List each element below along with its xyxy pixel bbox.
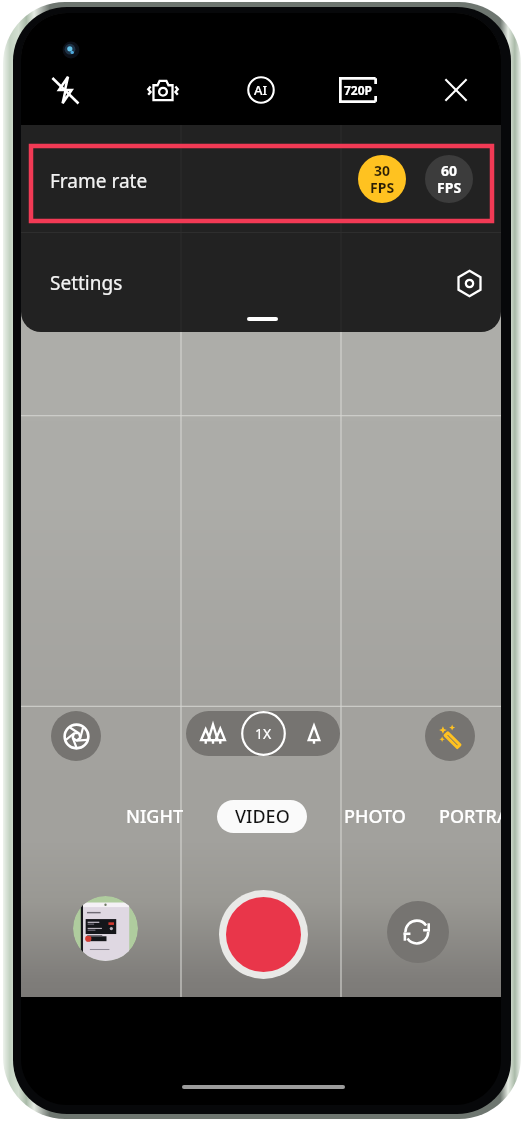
staticText: 30 — [374, 161, 391, 180]
staticText: 60 — [441, 161, 458, 180]
button[interactable]: Ultra wide — [186, 711, 239, 756]
button[interactable]: 1X — [239, 711, 287, 756]
staticText: PHOTO — [344, 804, 406, 829]
button[interactable]: Resolution 720P — [335, 67, 381, 113]
button[interactable]: Flash off — [42, 67, 88, 113]
button[interactable]: Video stabilisation — [140, 67, 186, 113]
button[interactable]: 60 — [425, 155, 473, 203]
button[interactable]: Effects — [425, 711, 475, 761]
button[interactable]: Close — [433, 67, 479, 113]
button[interactable]: Record — [219, 890, 308, 979]
staticText: NIGHT — [126, 804, 184, 829]
button[interactable]: Frame rate — [21, 125, 501, 232]
staticText: Settings — [50, 270, 123, 296]
staticText: PORTRAIT — [439, 804, 501, 829]
staticText: VIDEO — [235, 804, 290, 829]
button[interactable]: VIDEO — [217, 800, 307, 833]
button[interactable]: Gallery — [73, 896, 138, 961]
button[interactable]: Telephoto — [287, 711, 340, 756]
button[interactable]: Aperture — [51, 711, 101, 761]
staticText: AI — [254, 81, 268, 99]
button[interactable]: Switch camera — [387, 901, 449, 963]
button[interactable]: PORTRAIT — [439, 800, 501, 833]
staticText: Frame rate — [50, 168, 148, 194]
button[interactable]: AI scene detection — [238, 67, 284, 113]
staticText: 720P — [344, 82, 373, 98]
staticText: 1X — [255, 724, 272, 743]
button[interactable]: Settings — [21, 232, 501, 332]
staticText: FPS — [437, 178, 462, 197]
button[interactable]: 30 — [358, 155, 406, 203]
button[interactable]: NIGHT — [119, 800, 190, 833]
staticText: FPS — [370, 178, 395, 197]
button[interactable]: PHOTO — [337, 800, 412, 833]
